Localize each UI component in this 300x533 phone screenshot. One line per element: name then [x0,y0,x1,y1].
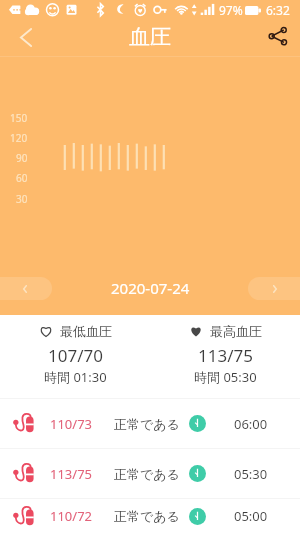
staticText: 正常である [114,466,180,482]
button[interactable]: 113/75 [0,449,300,498]
staticText: 150 [10,111,28,125]
button[interactable]: 最低血圧 [0,315,150,398]
staticText: 最低血圧 [60,323,112,339]
button[interactable]: Back [7,18,45,56]
staticText: 2020-07-24 [111,278,190,298]
staticText: 90 [16,151,28,165]
button[interactable]: Share [258,18,296,56]
staticText: 30 [16,192,28,206]
staticText: 最高血圧 [210,323,262,339]
button[interactable]: Next day [248,277,300,300]
button[interactable]: 最高血圧 [150,315,300,398]
staticText: 06:00 [234,415,268,433]
staticText: 113/75 [198,344,253,367]
staticText: 05:00 [234,507,268,525]
staticText: 05:30 [234,465,268,483]
staticText: 正常である [114,416,180,432]
staticText: 107/70 [48,344,103,367]
button[interactable]: 110/73 [0,399,300,448]
button[interactable]: 110/72 [0,499,300,533]
staticText: 時間 05:30 [194,368,257,386]
staticText: 正常である [114,508,180,524]
staticText: 60 [16,171,28,185]
staticText: 110/73 [50,415,93,433]
staticText: 97% [219,2,243,18]
staticText: 110/72 [50,507,93,525]
staticText: 血圧 [129,24,171,50]
staticText: 113/75 [50,465,93,483]
staticText: 時間 01:30 [44,368,107,386]
staticText: 120 [10,131,28,145]
button[interactable]: Previous day [0,277,52,300]
staticText: 6:32 [266,2,290,18]
